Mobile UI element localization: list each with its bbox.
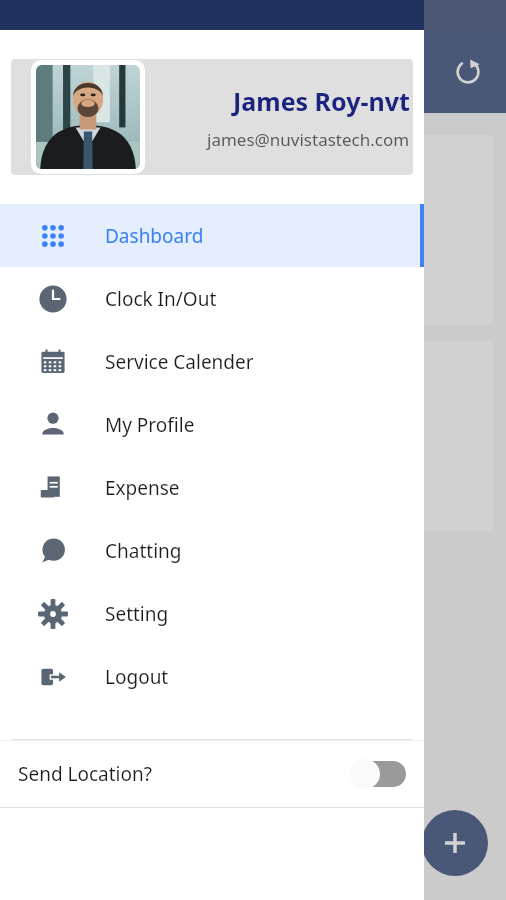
staticText: james@nuvistastech.com (207, 128, 410, 151)
staticText: Job Start (32, 157, 112, 184)
staticText: Send Location? (18, 761, 152, 787)
button[interactable]: Refresh (444, 48, 492, 96)
button[interactable]: My Profile (0, 393, 424, 456)
button[interactable]: Expense (0, 456, 424, 519)
button[interactable]: Job Start (12, 135, 494, 325)
staticText: 23 (32, 214, 99, 293)
button[interactable]: Setting (0, 582, 424, 645)
staticText: Expense (105, 475, 180, 501)
staticText: Logout (105, 664, 169, 690)
staticText: Chatting (105, 538, 182, 564)
button[interactable]: Add (422, 810, 488, 876)
button[interactable]: Dashboard (0, 204, 424, 267)
staticText: 3 (32, 420, 66, 499)
button[interactable]: James Roy-nvt (11, 59, 413, 175)
button[interactable]: Chatting (0, 519, 424, 582)
staticText: Jobs (32, 363, 72, 390)
button[interactable]: Jobs (12, 341, 494, 531)
button[interactable]: Send Location? (0, 741, 424, 807)
staticText: Service Calender (105, 349, 254, 375)
staticText: James Roy-nvt (233, 84, 410, 118)
button[interactable]: Clock In/Out (0, 267, 424, 330)
staticText: Dashboard (105, 223, 204, 249)
staticText: Setting (105, 601, 169, 627)
button[interactable]: Logout (0, 645, 424, 708)
staticText: My Profile (105, 412, 195, 438)
staticText: Clock In/Out (105, 286, 217, 312)
button[interactable]: Service Calender (0, 330, 424, 393)
